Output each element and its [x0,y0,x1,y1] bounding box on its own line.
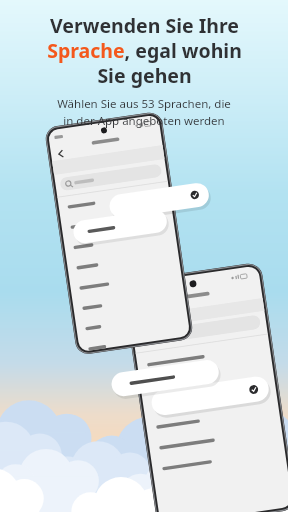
staticText: Wählen Sie aus 53 Sprachen, die in der A… [57,96,231,128]
staticText: Verwenden Sie Ihre Sprache, egal wohin S… [47,12,242,88]
button[interactable]: Sprachen und Währung auswählen [0,0,288,512]
